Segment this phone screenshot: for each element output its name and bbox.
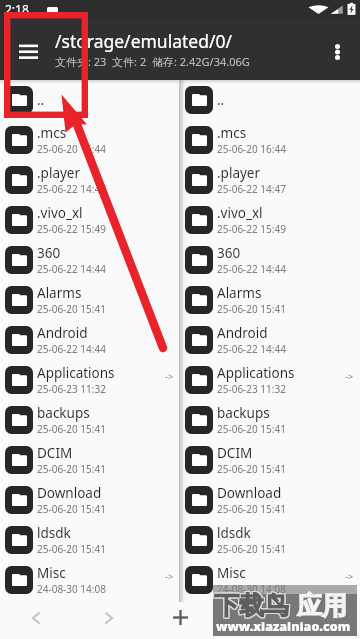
button[interactable]: .vivo_xl (180, 200, 360, 240)
button[interactable]: .mcs (0, 120, 180, 160)
staticText: Download (217, 484, 282, 502)
staticText: 下载鸟 (214, 589, 289, 620)
button[interactable]: backups (0, 400, 180, 440)
staticText: .vivo_xl (37, 204, 83, 222)
staticText: 24-08-30 14:08 (37, 582, 106, 596)
staticText: 25-06-20 16:44 (37, 142, 106, 156)
staticText: Misc (217, 564, 246, 582)
button[interactable]: .. (0, 80, 180, 120)
staticText: 下载鸟 (215, 591, 290, 622)
staticText: Alarms (217, 284, 262, 302)
staticText: 下载鸟 (215, 590, 290, 621)
staticText: backups (37, 404, 90, 422)
button[interactable]: .. (180, 80, 360, 120)
staticText: .player (37, 164, 81, 182)
button[interactable]: Back (13, 599, 58, 636)
staticText: Android (37, 324, 88, 342)
staticText: Misc (37, 564, 66, 582)
staticText: ldsdk (37, 524, 71, 542)
staticText: 25-06-22 14:44 (217, 262, 286, 276)
staticText: -> (345, 370, 354, 382)
staticText: 25-06-22 14:47 (37, 182, 106, 196)
staticText: 25-06-23 11:32 (217, 382, 286, 396)
staticText: 25-06-20 15:41 (217, 462, 286, 476)
staticText: /storage/emulated/0/ (55, 29, 232, 53)
button[interactable]: 360 (0, 240, 180, 280)
staticText: 2:18 (5, 1, 29, 17)
staticText: 下载鸟 (213, 591, 288, 622)
button[interactable]: Add (158, 599, 203, 636)
staticText: .player (217, 164, 261, 182)
button[interactable]: Alarms (180, 280, 360, 320)
staticText: .vivo_xl (217, 204, 263, 222)
button[interactable]: .player (0, 160, 180, 200)
staticText: DCIM (217, 444, 253, 462)
button[interactable]: Forward (86, 599, 131, 636)
button[interactable]: Applications (0, 360, 180, 400)
staticText: 25-06-20 15:41 (217, 542, 286, 556)
button[interactable]: Android (180, 320, 360, 360)
staticText: 下载鸟 (214, 591, 289, 622)
staticText: 25-06-22 14:44 (37, 342, 106, 356)
staticText: Download (37, 484, 102, 502)
staticText: DCIM (37, 444, 73, 462)
button[interactable]: .mcs (180, 120, 360, 160)
staticText: Alarms (37, 284, 82, 302)
staticText: 360 (217, 244, 241, 262)
button[interactable]: Android (0, 320, 180, 360)
staticText: .. (217, 91, 225, 109)
staticText: www.xiazainiao.com (216, 618, 351, 635)
button[interactable]: .player (180, 160, 360, 200)
staticText: 25-06-22 14:44 (217, 342, 286, 356)
button[interactable]: backups (180, 400, 360, 440)
button[interactable]: ldsdk (180, 520, 360, 560)
staticText: 25-06-20 15:41 (217, 302, 286, 316)
staticText: 25-06-22 15:49 (37, 222, 106, 236)
staticText: -> (165, 370, 174, 382)
staticText: Applications (37, 364, 115, 382)
staticText: 25-06-22 15:49 (217, 222, 286, 236)
staticText: 25-06-20 15:41 (37, 502, 106, 516)
button[interactable]: Alarms (0, 280, 180, 320)
staticText: 下载鸟 (215, 589, 290, 620)
staticText: 25-06-20 15:41 (37, 462, 106, 476)
button[interactable]: Misc (0, 560, 180, 600)
staticText: 25-06-20 16:44 (217, 142, 286, 156)
staticText: 25-06-20 15:41 (217, 422, 286, 436)
button[interactable]: Misc (180, 560, 360, 600)
staticText: Android (217, 324, 268, 342)
staticText: 25-06-20 15:41 (37, 302, 106, 316)
staticText: 下载鸟 (213, 589, 288, 620)
staticText: ldsdk (217, 524, 251, 542)
button[interactable]: Download (0, 480, 180, 520)
button[interactable]: 360 (180, 240, 360, 280)
staticText: 25-06-20 15:41 (37, 422, 106, 436)
button[interactable]: DCIM (0, 440, 180, 480)
button[interactable]: .vivo_xl (0, 200, 180, 240)
staticText: Applications (217, 364, 295, 382)
staticText: .mcs (37, 124, 67, 142)
staticText: -> (345, 570, 354, 582)
button[interactable]: Download (180, 480, 360, 520)
staticText: 25-06-22 14:47 (217, 182, 286, 196)
button[interactable]: More options (316, 18, 360, 80)
staticText: 25-06-23 11:32 (37, 382, 106, 396)
staticText: 下载鸟 (213, 590, 288, 621)
staticText: 25-06-20 15:41 (37, 542, 106, 556)
staticText: 24-08-30 14:08 (217, 582, 286, 596)
staticText: 25-06-22 14:44 (37, 262, 106, 276)
staticText: .. (37, 91, 45, 109)
staticText: 文件夹: 23 文件: 2 储存: 2.42G/34.06G (55, 54, 250, 69)
button[interactable]: Applications (180, 360, 360, 400)
staticText: 360 (37, 244, 61, 262)
button[interactable]: Menu (0, 18, 55, 80)
button[interactable]: ldsdk (0, 520, 180, 560)
staticText: 下载鸟 (214, 590, 289, 621)
staticText: 应用 (297, 590, 347, 621)
button[interactable]: DCIM (180, 440, 360, 480)
staticText: backups (217, 404, 270, 422)
staticText: -> (165, 570, 174, 582)
staticText: 25-06-20 15:41 (217, 502, 286, 516)
staticText: .mcs (217, 124, 247, 142)
